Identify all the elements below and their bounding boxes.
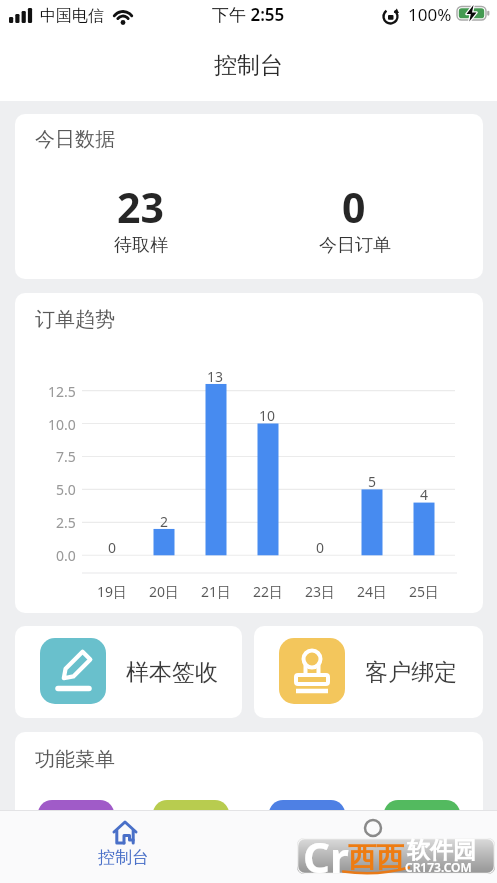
staticText: 西西 — [348, 840, 404, 875]
staticText: 19日 — [97, 582, 128, 601]
staticText: 23日 — [305, 582, 336, 601]
staticText: 控制台 — [98, 847, 149, 868]
staticText: 0 — [316, 538, 325, 557]
staticText: 订单趋势 — [35, 307, 115, 332]
staticText: 25日 — [409, 582, 440, 601]
staticText: 今日数据 — [35, 127, 115, 152]
staticText: 今日订单 — [319, 234, 391, 257]
staticText: 21日 — [201, 582, 232, 601]
staticText: 功能菜单 — [35, 747, 115, 772]
staticText: 客户绑定 — [365, 658, 457, 687]
staticText: 7.5 — [56, 447, 76, 466]
staticText: 0 — [108, 538, 117, 557]
staticText: 样本签收 — [126, 658, 218, 687]
staticText: CR173.COM — [405, 859, 472, 875]
staticText: 下午 2:55 — [212, 3, 285, 26]
staticText: 中国电信 — [40, 6, 104, 26]
staticText: 4 — [420, 485, 429, 504]
staticText: 22日 — [253, 582, 284, 601]
staticText: 0 — [342, 179, 366, 235]
staticText: 10.0 — [48, 415, 76, 434]
staticText: Cr — [303, 828, 349, 883]
staticText: 100% — [408, 3, 452, 26]
staticText: 13 — [207, 367, 224, 386]
staticText: 5 — [368, 472, 377, 491]
staticText: 我的 — [356, 847, 390, 868]
staticText: 20日 — [149, 582, 180, 601]
staticText: 12.5 — [48, 382, 76, 401]
staticText: 待取样 — [114, 234, 168, 257]
staticText: 5.0 — [56, 480, 76, 499]
staticText: 2 — [160, 512, 169, 531]
staticText: 2.5 — [56, 513, 76, 532]
staticText: 23 — [117, 179, 164, 235]
staticText: 24日 — [357, 582, 388, 601]
staticText: 0.0 — [56, 546, 76, 565]
staticText: 控制台 — [214, 51, 283, 80]
staticText: 10 — [259, 406, 276, 425]
staticText: 软件园 — [407, 836, 476, 865]
